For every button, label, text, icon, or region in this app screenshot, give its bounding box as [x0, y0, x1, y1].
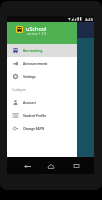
staticText: Student Profile — [23, 113, 47, 118]
button[interactable]: Recents — [68, 160, 84, 172]
staticText: Change SAPN — [23, 126, 44, 131]
staticText: Settings — [23, 74, 36, 79]
staticText: 4:45 — [85, 17, 93, 22]
button[interactable]: Home — [43, 160, 59, 172]
button[interactable]: Settings — [7, 70, 77, 83]
staticText: Account — [23, 100, 36, 105]
staticText: uSchool — [26, 25, 47, 32]
button[interactable]: Change SAPN — [7, 122, 77, 135]
button[interactable]: Account — [7, 96, 77, 109]
button[interactable]: Student Profile — [7, 109, 77, 122]
staticText: version 1.7.8 — [27, 32, 46, 36]
button[interactable]: Back — [19, 160, 35, 172]
button[interactable]: Announcement — [7, 57, 77, 70]
staticText: Announcement — [23, 61, 48, 66]
button[interactable]: Bus tracking — [7, 44, 77, 57]
staticText: Configure — [12, 88, 26, 92]
staticText: Bus tracking — [23, 48, 43, 53]
